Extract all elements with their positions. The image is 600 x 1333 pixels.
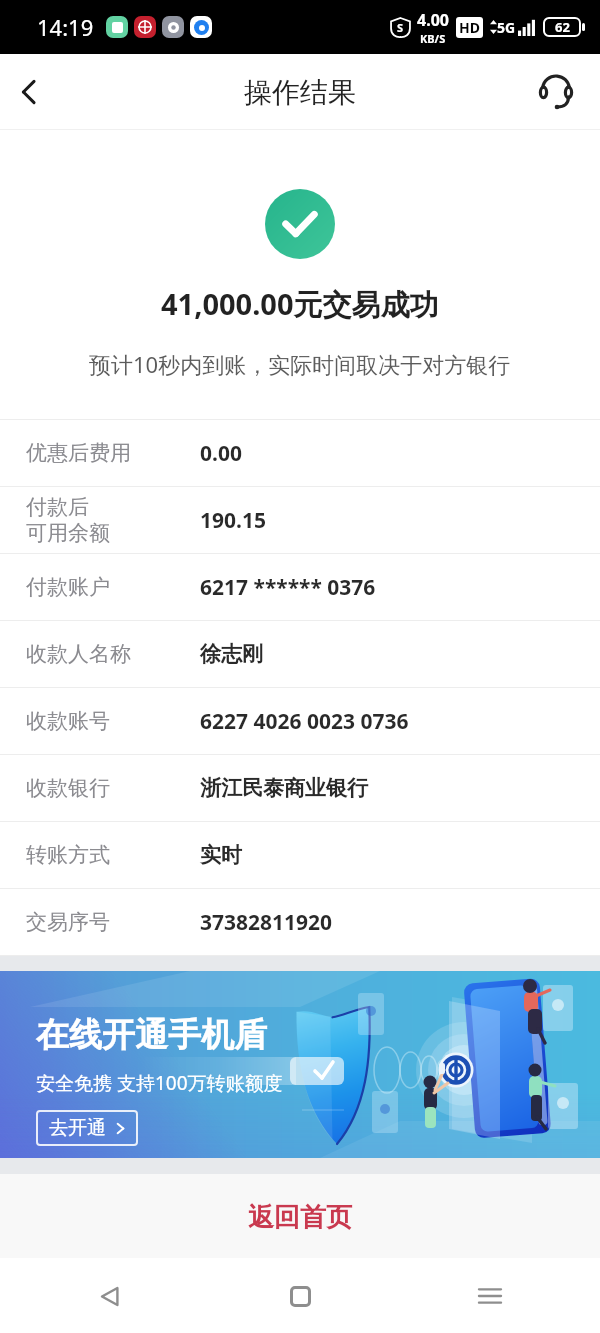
staticText: 收款银行: [26, 775, 110, 801]
staticText: 14:19: [37, 12, 94, 42]
staticText: 付款账户: [26, 574, 110, 600]
staticText: 0.00: [200, 439, 242, 468]
staticText: HD: [459, 18, 480, 37]
button[interactable]: 交易序号: [0, 889, 600, 955]
button[interactable]: 付款后 可用余额: [0, 487, 600, 553]
button[interactable]: Back: [80, 1266, 140, 1326]
staticText: S: [397, 20, 404, 35]
button[interactable]: 优惠后费用: [0, 420, 600, 486]
staticText: 6217 ****** 0376: [200, 573, 376, 602]
button[interactable]: 收款人名称: [0, 621, 600, 687]
staticText: 操作结果: [244, 75, 356, 110]
button[interactable]: 返回首页: [224, 1193, 376, 1242]
button[interactable]: 去开通: [36, 1110, 138, 1146]
staticText: 6227 4026 0023 0736: [200, 707, 409, 736]
staticText: 4.00: [417, 9, 449, 31]
staticText: 去开通: [49, 1116, 106, 1140]
button[interactable]: 转账方式: [0, 822, 600, 888]
button[interactable]: 收款账号: [0, 688, 600, 754]
staticText: 62: [555, 18, 570, 36]
staticText: 转账方式: [26, 842, 110, 868]
staticText: 安全免携 支持100万转账额度: [36, 1070, 283, 1096]
staticText: 返回首页: [248, 1201, 352, 1234]
staticText: 实时: [200, 842, 242, 868]
staticText: 37382811920: [200, 908, 333, 937]
button[interactable]: 在线开通手机盾 banner: [0, 971, 600, 1158]
staticText: 5G: [497, 18, 516, 37]
button[interactable]: 付款账户: [0, 554, 600, 620]
staticText: KB/S: [420, 31, 446, 46]
button[interactable]: Home: [270, 1266, 330, 1326]
staticText: 徐志刚: [200, 641, 263, 667]
staticText: 付款后 可用余额: [26, 494, 110, 547]
staticText: 41,000.00元交易成功: [161, 284, 439, 324]
staticText: 收款人名称: [26, 641, 131, 667]
staticText: 浙江民泰商业银行: [200, 775, 368, 801]
button[interactable]: Recent apps: [460, 1266, 520, 1326]
staticText: 预计10秒内到账，实际时间取决于对方银行: [89, 349, 511, 379]
staticText: 在线开通手机盾: [36, 1014, 267, 1056]
staticText: 优惠后费用: [26, 440, 131, 466]
staticText: 收款账号: [26, 708, 110, 734]
staticText: 交易序号: [26, 909, 110, 935]
button[interactable]: Back: [2, 65, 56, 119]
button[interactable]: Customer service: [530, 66, 582, 118]
staticText: 190.15: [200, 506, 266, 535]
button[interactable]: 收款银行: [0, 755, 600, 821]
